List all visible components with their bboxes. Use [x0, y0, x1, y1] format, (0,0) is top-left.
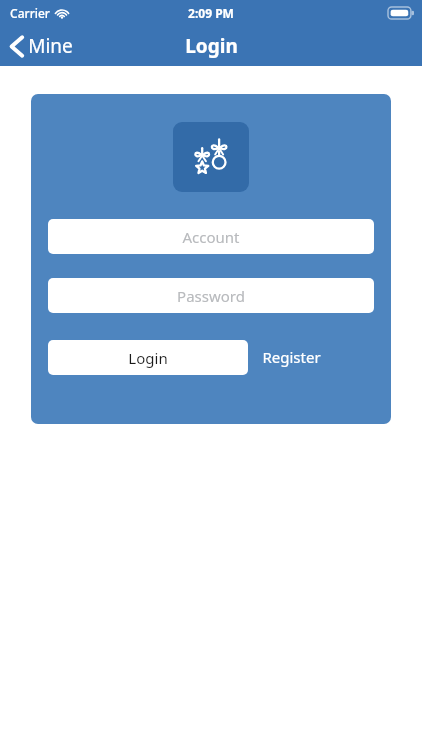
staticText: Login: [185, 33, 238, 59]
button[interactable]: Register: [256, 339, 327, 375]
staticText: Carrier: [10, 5, 50, 21]
staticText: Mine: [28, 33, 73, 59]
other: App logo: [189, 135, 233, 179]
staticText: Login: [128, 348, 168, 368]
button[interactable]: Login: [48, 340, 248, 375]
staticText: 2:09 PM: [188, 5, 234, 21]
button[interactable]: Password: [48, 278, 374, 313]
staticText: Register: [262, 347, 321, 367]
button[interactable]: Account: [48, 219, 374, 254]
button[interactable]: Mine: [0, 29, 85, 63]
staticText: Password: [177, 286, 245, 306]
staticText: Account: [182, 227, 240, 247]
